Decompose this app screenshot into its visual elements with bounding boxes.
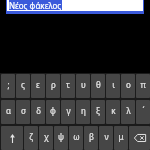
staticText: ζ: [29, 131, 33, 142]
staticText: ρ: [51, 79, 56, 90]
staticText: ;: [7, 79, 10, 90]
staticText: σ: [21, 105, 26, 116]
staticText: ΄: [142, 104, 145, 116]
button[interactable]: Νέος φάκελος: [6, 0, 144, 14]
button[interactable]: ω: [69, 126, 83, 150]
staticText: ξ: [96, 105, 100, 116]
staticText: λ: [126, 105, 131, 116]
button[interactable]: Backspace: [129, 126, 150, 150]
staticText: ο: [126, 79, 131, 90]
staticText: ν: [104, 131, 109, 142]
staticText: φ: [50, 105, 56, 116]
staticText: π: [140, 79, 146, 90]
button[interactable]: ε: [31, 74, 45, 98]
button[interactable]: λ: [121, 100, 135, 124]
button[interactable]: ρ: [46, 74, 60, 98]
button[interactable]: τ: [61, 74, 75, 98]
button[interactable]: η: [76, 100, 90, 124]
button[interactable]: ι: [106, 74, 120, 98]
button[interactable]: ;: [1, 74, 15, 98]
staticText: υ: [81, 79, 86, 90]
staticText: δ: [36, 105, 41, 116]
button[interactable]: ξ: [91, 100, 105, 124]
staticText: γ: [66, 105, 71, 116]
button[interactable]: β: [84, 126, 98, 150]
staticText: ε: [36, 79, 40, 90]
staticText: τ: [66, 79, 70, 90]
button[interactable]: σ: [16, 100, 30, 124]
staticText: Νέος φάκελος: [9, 0, 62, 10]
button[interactable]: α: [1, 100, 15, 124]
staticText: ς: [21, 79, 25, 90]
staticText: β: [89, 131, 94, 142]
staticText: χ: [44, 131, 49, 142]
staticText: η: [81, 105, 86, 116]
button[interactable]: ζ: [24, 126, 38, 150]
button[interactable]: ς: [16, 74, 30, 98]
button[interactable]: ν: [99, 126, 113, 150]
button[interactable]: ΄: [136, 100, 150, 124]
button[interactable]: χ: [39, 126, 53, 150]
button[interactable]: ψ: [54, 126, 68, 150]
button[interactable]: ο: [121, 74, 135, 98]
button[interactable]: υ: [76, 74, 90, 98]
button[interactable]: κ: [106, 100, 120, 124]
button[interactable]: μ: [114, 126, 128, 150]
button[interactable]: γ: [61, 100, 75, 124]
staticText: μ: [118, 131, 124, 142]
button[interactable]: Shift: [1, 126, 23, 150]
staticText: ψ: [58, 131, 64, 142]
staticText: θ: [96, 79, 101, 90]
button[interactable]: θ: [91, 74, 105, 98]
button[interactable]: φ: [46, 100, 60, 124]
button[interactable]: δ: [31, 100, 45, 124]
button[interactable]: π: [136, 74, 150, 98]
staticText: α: [6, 105, 11, 116]
staticText: ι: [112, 79, 115, 90]
staticText: ω: [73, 131, 80, 142]
staticText: κ: [111, 105, 116, 116]
